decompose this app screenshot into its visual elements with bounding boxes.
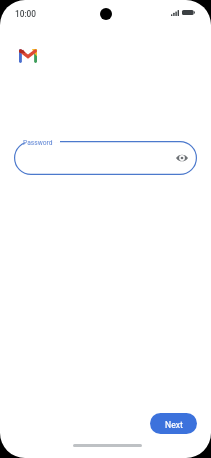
staticText: Next — [165, 420, 183, 430]
staticText: Password — [23, 139, 53, 147]
staticText: 10:00 — [15, 9, 37, 19]
button[interactable]: Next — [150, 413, 197, 434]
button[interactable]: Show password — [176, 154, 188, 162]
